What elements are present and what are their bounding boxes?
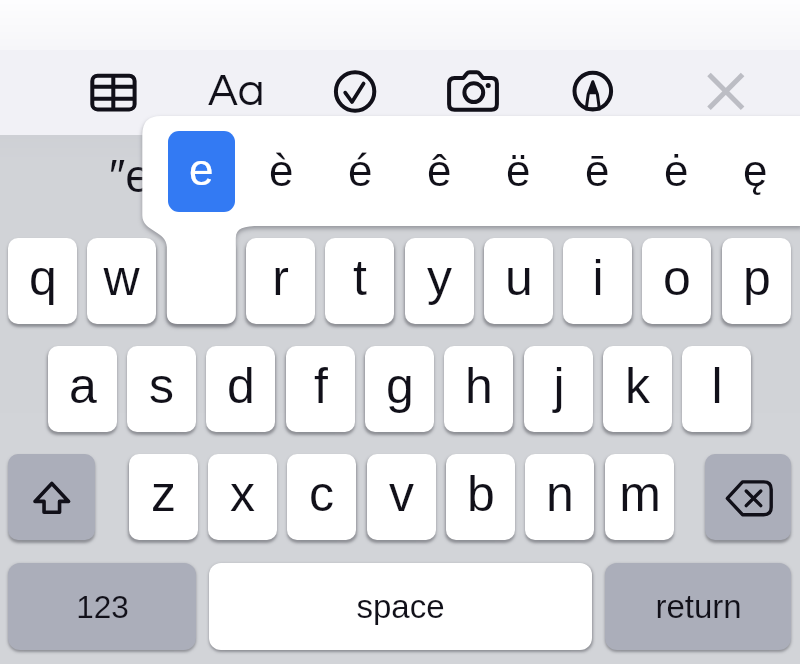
staticText: ë xyxy=(506,146,531,195)
staticText: t xyxy=(353,250,367,306)
staticText: y xyxy=(427,250,452,306)
staticText: a xyxy=(69,358,97,414)
staticText: é xyxy=(348,146,373,195)
button[interactable]: i xyxy=(563,238,632,324)
staticText: g xyxy=(386,358,414,414)
staticText: p xyxy=(743,250,771,306)
staticText: ″e xyxy=(109,150,151,201)
button[interactable]: w xyxy=(87,238,156,324)
button[interactable]: Shift xyxy=(8,454,95,540)
button[interactable]: Close xyxy=(700,66,752,118)
button[interactable]: j xyxy=(524,346,593,432)
button[interactable]: b xyxy=(446,454,515,540)
staticText: f xyxy=(314,358,328,414)
button[interactable]: o xyxy=(642,238,711,324)
staticText: z xyxy=(151,466,176,522)
button[interactable]: f xyxy=(286,346,355,432)
staticText: space xyxy=(356,588,445,625)
staticText: h xyxy=(465,358,493,414)
staticText: d xyxy=(227,358,255,414)
button[interactable]: Checklist xyxy=(328,64,383,120)
button[interactable]: x xyxy=(208,454,277,540)
button[interactable]: e xyxy=(168,131,235,212)
staticText: u xyxy=(505,250,533,306)
button[interactable]: l xyxy=(682,346,751,432)
button[interactable]: y xyxy=(405,238,474,324)
staticText: x xyxy=(230,466,255,522)
button[interactable]: ē xyxy=(562,134,632,212)
staticText: l xyxy=(711,358,723,414)
staticText: j xyxy=(553,358,565,414)
button[interactable]: return xyxy=(605,563,791,650)
staticText: ê xyxy=(427,146,452,195)
button[interactable]: k xyxy=(603,346,672,432)
staticText: v xyxy=(389,466,414,522)
button[interactable]: c xyxy=(287,454,356,540)
staticText: m xyxy=(619,466,661,522)
button[interactable]: Table xyxy=(82,64,146,120)
staticText: n xyxy=(546,466,574,522)
button[interactable]: a xyxy=(48,346,117,432)
staticText: i xyxy=(592,250,604,306)
button[interactable]: Camera xyxy=(442,64,504,120)
button[interactable]: m xyxy=(605,454,674,540)
button[interactable]: h xyxy=(444,346,513,432)
staticText: è xyxy=(269,146,294,195)
button[interactable]: e xyxy=(167,238,236,324)
button[interactable]: p xyxy=(722,238,791,324)
staticText: w xyxy=(103,250,140,306)
button[interactable]: ė xyxy=(641,134,711,212)
staticText: s xyxy=(149,358,174,414)
staticText: c xyxy=(309,466,334,522)
staticText: b xyxy=(467,466,495,522)
button[interactable]: r xyxy=(246,238,315,324)
button[interactable]: ę xyxy=(720,134,790,212)
staticText: ė xyxy=(664,146,689,195)
staticText: 123 xyxy=(76,589,129,624)
button[interactable]: è xyxy=(246,134,316,212)
button[interactable]: n xyxy=(525,454,594,540)
button[interactable]: Backspace xyxy=(705,454,791,540)
button[interactable]: g xyxy=(365,346,434,432)
button[interactable]: q xyxy=(8,238,77,324)
button[interactable]: ê xyxy=(404,134,474,212)
staticText: return xyxy=(655,588,742,625)
button[interactable]: t xyxy=(325,238,394,324)
button[interactable]: Text format xyxy=(205,64,267,120)
button[interactable]: ë xyxy=(483,134,553,212)
button[interactable]: v xyxy=(367,454,436,540)
staticText: q xyxy=(29,250,57,306)
button[interactable]: d xyxy=(206,346,275,432)
staticText: k xyxy=(625,358,650,414)
button[interactable]: u xyxy=(484,238,553,324)
staticText: e xyxy=(189,145,214,194)
staticText: ę xyxy=(743,146,768,195)
staticText: Aa xyxy=(208,68,265,114)
button[interactable]: space xyxy=(209,563,592,650)
button[interactable]: z xyxy=(129,454,198,540)
button[interactable]: é xyxy=(325,134,395,212)
staticText: o xyxy=(663,250,691,306)
button[interactable]: 123 xyxy=(8,563,196,650)
button[interactable]: s xyxy=(127,346,196,432)
staticText: ē xyxy=(585,146,610,195)
staticText: r xyxy=(272,250,289,306)
button[interactable]: Markup xyxy=(570,68,616,116)
